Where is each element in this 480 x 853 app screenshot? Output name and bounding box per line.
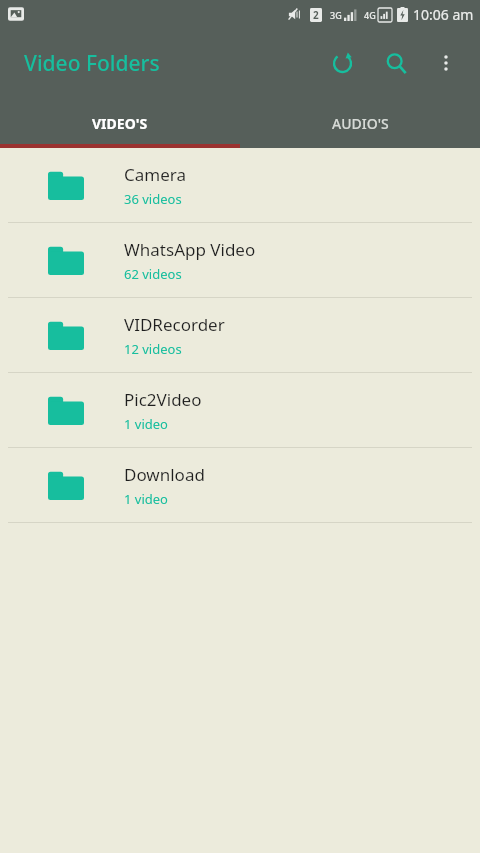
staticText: 2 <box>313 8 319 22</box>
button[interactable]: WhatsApp Video <box>0 223 480 297</box>
staticText: VIDRecorder <box>124 313 225 336</box>
staticText: 10:06 am <box>413 5 474 24</box>
staticText: Video Folders <box>24 49 160 78</box>
staticText: AUDIO'S <box>332 114 389 133</box>
staticText: Camera <box>124 163 186 186</box>
staticText: 1 video <box>124 415 168 433</box>
staticText: 62 videos <box>124 265 182 283</box>
staticText: 4G <box>364 9 376 21</box>
staticText: 1 video <box>124 490 168 508</box>
button[interactable]: Refresh <box>318 39 366 87</box>
button[interactable]: Download <box>0 448 480 522</box>
button[interactable]: Video Folders <box>24 49 160 78</box>
staticText: 36 videos <box>124 190 182 208</box>
staticText: Pic2Video <box>124 388 202 411</box>
button[interactable]: AUDIO'S <box>240 98 480 148</box>
button[interactable]: VIDEO'S <box>0 98 240 148</box>
staticText: Download <box>124 463 205 486</box>
button[interactable]: Search <box>372 39 420 87</box>
staticText: VIDEO'S <box>92 114 148 133</box>
button[interactable]: Pic2Video <box>0 373 480 447</box>
staticText: 3G <box>330 9 342 21</box>
button[interactable]: VIDRecorder <box>0 298 480 372</box>
button[interactable]: Camera <box>0 148 480 222</box>
staticText: WhatsApp Video <box>124 238 256 261</box>
button[interactable]: More options <box>422 39 470 87</box>
staticText: 12 videos <box>124 340 182 358</box>
